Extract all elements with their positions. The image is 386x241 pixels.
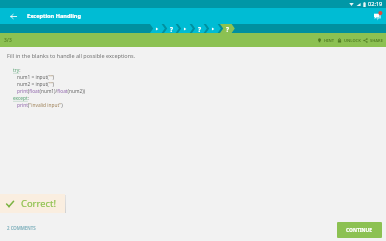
staticText: print(float(num1)/float(num2)) <box>17 88 86 95</box>
staticText: try: <box>13 67 21 74</box>
staticText: Exception Handling <box>27 12 82 20</box>
staticText: ? <box>226 25 229 33</box>
staticText: 3/3 <box>4 37 12 44</box>
staticText: num1 = input("") <box>17 74 55 81</box>
staticText: print("invalid input") <box>17 102 63 109</box>
staticText: ? <box>198 25 201 33</box>
button[interactable]: Lesson 5 <box>206 24 220 33</box>
staticText: Fill in the blanks to handle all possibl… <box>7 52 136 59</box>
button[interactable]: Lesson 3 <box>178 24 192 33</box>
button[interactable]: 2 COMMENTS <box>7 225 36 231</box>
staticText: UNLOCK <box>344 38 361 43</box>
button[interactable]: HINT <box>317 38 335 43</box>
button[interactable]: Lesson 4 <box>192 24 206 33</box>
button[interactable]: Current lesson <box>220 24 234 33</box>
staticText: ? <box>170 25 173 33</box>
staticText: Correct! <box>21 197 56 210</box>
button[interactable]: SHARE <box>363 38 383 43</box>
staticText: HINT <box>324 38 335 43</box>
button[interactable]: Back <box>0 8 26 24</box>
button[interactable]: Lesson 1 <box>150 24 164 33</box>
staticText: num2 = input("") <box>17 81 55 88</box>
button[interactable]: Lesson 2 <box>164 24 178 33</box>
staticText: SHARE <box>370 38 383 43</box>
staticText: 02:19 <box>368 0 383 8</box>
button[interactable]: UNLOCK <box>337 38 361 43</box>
staticText: except: <box>13 95 30 102</box>
button[interactable]: CONTINUE <box>337 222 382 238</box>
button[interactable]: Correct! <box>0 194 65 213</box>
button[interactable]: Messages <box>370 8 386 24</box>
staticText: CONTINUE <box>346 227 373 234</box>
